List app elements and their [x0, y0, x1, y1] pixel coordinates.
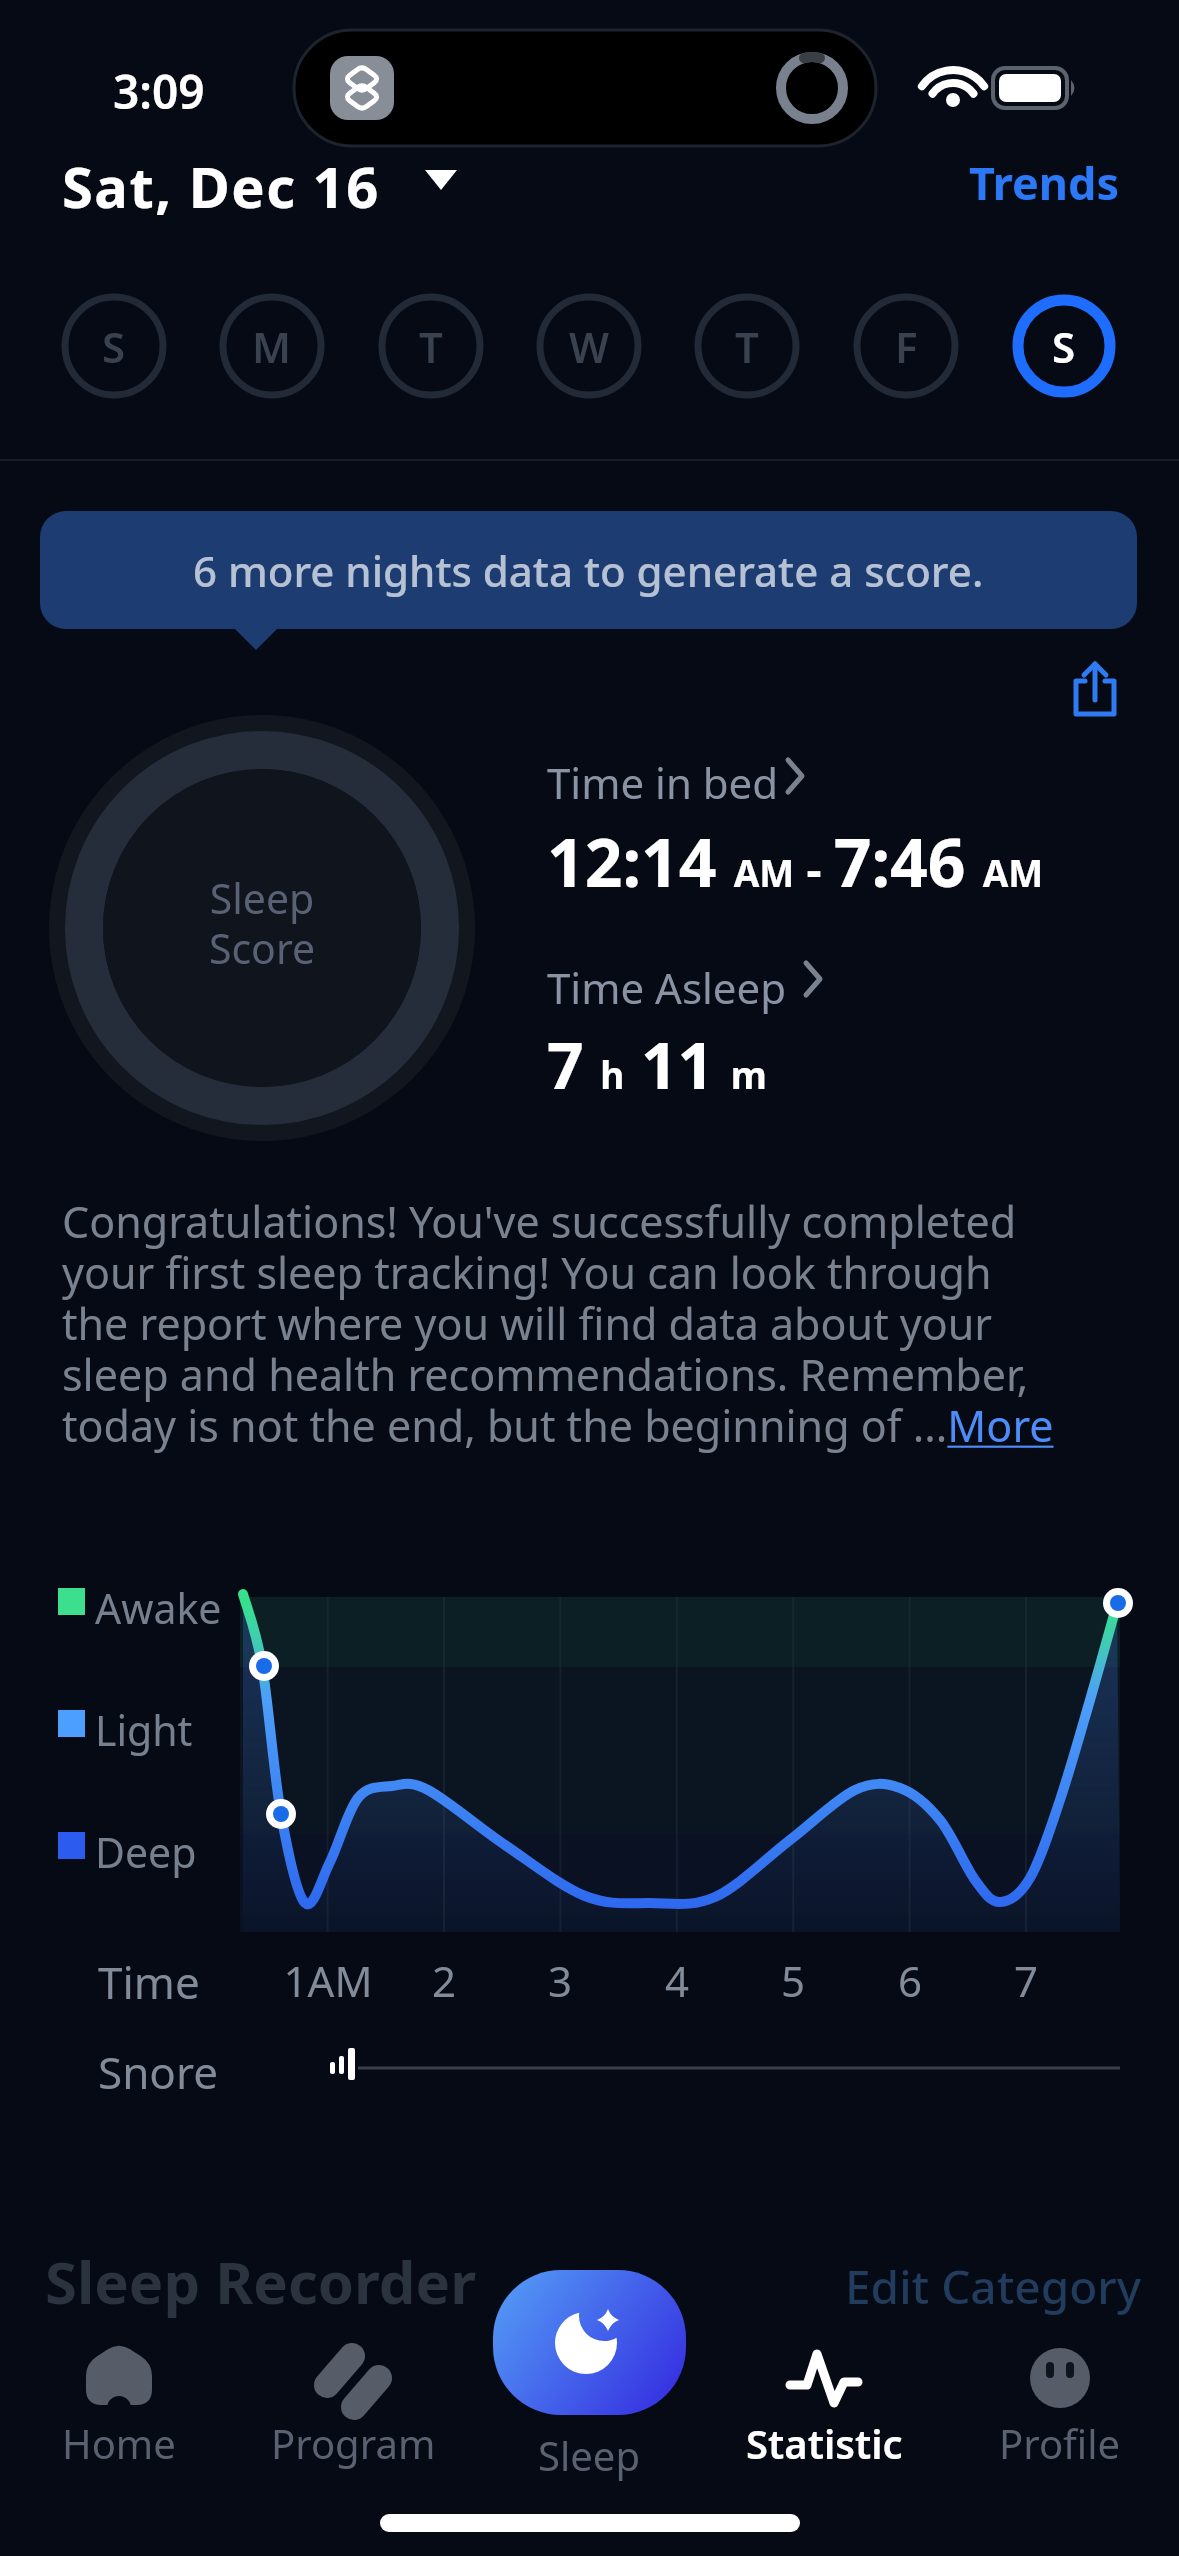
button[interactable]: W [537, 294, 641, 398]
staticText: Profile [999, 2416, 1121, 2470]
staticText: Time in bed [547, 754, 779, 811]
button[interactable]: Home [19, 2338, 219, 2470]
staticText: 6 more nights data to generate a score. [193, 542, 984, 599]
button[interactable]: 6 more nights data to generate a score. [40, 511, 1137, 629]
button[interactable]: Program [253, 2338, 453, 2470]
button[interactable]: Trends [960, 152, 1120, 210]
staticText: T [735, 318, 759, 375]
staticText: Time Asleep [547, 959, 787, 1016]
staticText: W [569, 318, 610, 375]
staticText: Edit Category [845, 2255, 1142, 2318]
staticText: Program [271, 2416, 436, 2470]
staticText: 1AM [268, 1952, 388, 2009]
staticText: Home [62, 2416, 176, 2470]
staticText: 2 [384, 1952, 504, 2009]
staticText: 5 [733, 1952, 853, 2009]
staticText: 7 h 11 m [547, 1021, 767, 1108]
staticText: Time [98, 1952, 200, 2012]
staticText: 12:14 AM - 7:46 AM [547, 816, 1044, 906]
button[interactable]: Edit Category [845, 2255, 1142, 2318]
button[interactable]: M [220, 294, 324, 398]
staticText: Statistic [746, 2416, 903, 2470]
staticText: Sleep [538, 2428, 640, 2482]
staticText: S [1052, 318, 1076, 375]
button[interactable] [493, 2270, 686, 2415]
staticText: Light [95, 1702, 193, 1758]
button[interactable]: T [695, 294, 799, 398]
staticText: 6 [850, 1952, 970, 2009]
button[interactable]: Sleep Recorder [45, 2242, 477, 2321]
staticText: Sleep Score [162, 870, 362, 976]
staticText: 3:09 [113, 60, 205, 123]
staticText: 7 [966, 1952, 1086, 2009]
button[interactable]: T [379, 294, 483, 398]
button[interactable]: S [62, 294, 166, 398]
staticText: Trends [969, 152, 1120, 210]
button[interactable] [540, 745, 1100, 925]
staticText: Sat, Dec 16 [62, 148, 380, 224]
staticText: T [419, 318, 443, 375]
button[interactable] [1058, 648, 1134, 728]
staticText: 3 [500, 1952, 620, 2009]
button[interactable]: Profile [960, 2338, 1160, 2470]
staticText: Awake [95, 1580, 222, 1636]
staticText: 4 [617, 1952, 737, 2009]
staticText: Snore [98, 2042, 219, 2102]
staticText: Sleep Recorder [45, 2242, 477, 2321]
staticText: M [252, 318, 292, 375]
staticText: Deep [95, 1824, 197, 1880]
button[interactable]: S [1012, 294, 1116, 398]
staticText: F [895, 318, 918, 375]
button[interactable]: F [854, 294, 958, 398]
staticText: S [102, 318, 126, 375]
button[interactable]: Statistic [724, 2338, 924, 2470]
staticText: Congratulations! You've successfully com… [62, 1192, 1162, 1455]
button[interactable] [540, 950, 1100, 1110]
